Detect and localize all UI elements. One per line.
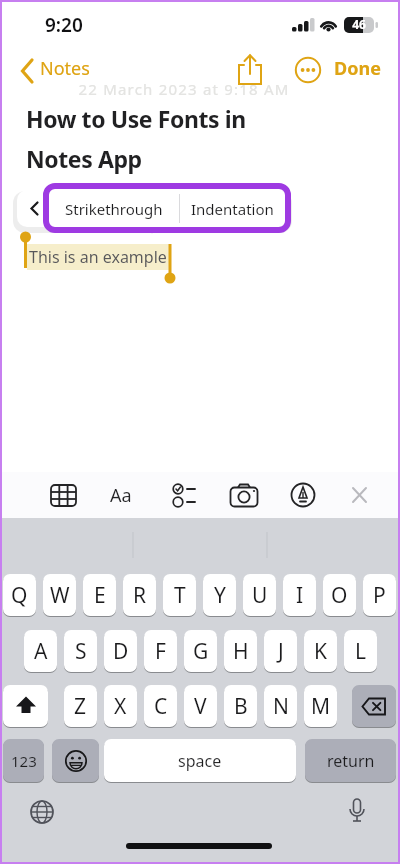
button[interactable]: Notes [14,54,124,88]
button[interactable]: Aa [102,478,140,512]
button[interactable]: return [305,739,396,782]
button[interactable]: F [144,630,177,672]
button[interactable]: Y [203,574,236,616]
staticText: space [178,750,222,772]
staticText: C [154,692,168,721]
button[interactable] [44,478,82,512]
staticText: O [331,581,348,610]
staticText: W [50,581,70,610]
staticText: Aa [110,483,132,508]
button[interactable]: M [304,685,337,727]
button[interactable]: E [83,574,116,616]
staticText: Indentation [191,199,274,219]
staticText: Done [334,56,381,81]
staticText: 9:20 [45,12,83,38]
staticText: Y [214,581,226,610]
button[interactable]: I [283,574,316,616]
staticText: 22 March 2023 at 9:18 AM [67,79,301,99]
staticText: M [311,692,331,721]
button[interactable]: Z [64,685,97,727]
staticText: P [373,581,386,610]
button[interactable]: space [104,739,296,782]
button[interactable]: Done [334,56,390,86]
button[interactable] [294,56,322,84]
staticText: V [194,692,207,721]
staticText: G [193,637,209,666]
button[interactable] [3,685,48,727]
staticText: How to Use Fonts in [26,103,246,134]
staticText: E [94,581,106,610]
button[interactable]: 123 [3,739,44,782]
staticText: 123 [11,751,37,771]
staticText: S [75,637,87,666]
button[interactable] [234,52,266,88]
button[interactable]: O [323,574,356,616]
staticText: This is an example [29,246,167,268]
staticText: return [327,750,375,772]
staticText: R [133,581,147,610]
button[interactable]: C [144,685,177,727]
button[interactable]: U [243,574,276,616]
button[interactable]: Q [3,574,36,616]
button[interactable]: J [264,630,297,672]
staticText: Q [11,581,28,610]
button[interactable]: W [43,574,76,616]
staticText: Z [74,692,87,721]
staticText: I [296,581,304,610]
button[interactable]: X [104,685,137,727]
button[interactable] [166,478,204,512]
button[interactable] [52,739,99,782]
staticText: T [174,581,186,610]
button[interactable]: T [163,574,196,616]
staticText: N [273,692,289,721]
button[interactable]: D [104,630,137,672]
button[interactable]: Strikethrough [49,190,179,227]
button[interactable] [342,478,378,512]
button[interactable]: A [24,630,57,672]
button[interactable]: N [264,685,297,727]
staticText: Notes [40,56,90,81]
staticText: B [234,692,248,721]
staticText: L [355,637,367,666]
button[interactable]: P [363,574,396,616]
staticText: 46 [344,16,374,32]
staticText: D [113,637,129,666]
staticText: J [278,637,284,666]
button[interactable]: R [123,574,156,616]
staticText: X [114,692,127,721]
button[interactable]: L [344,630,377,672]
staticText: U [252,581,268,610]
staticText: F [155,637,166,666]
staticText: K [314,637,327,666]
staticText: H [233,637,249,666]
staticText: Strikethrough [65,199,163,219]
staticText: A [34,637,48,666]
button[interactable] [284,478,322,512]
button[interactable]: S [64,630,97,672]
button[interactable]: V [184,685,217,727]
button[interactable]: G [184,630,217,672]
button[interactable]: H [224,630,257,672]
button[interactable]: Indentation [180,190,285,227]
button[interactable] [352,685,396,727]
button[interactable]: K [304,630,337,672]
staticText: Notes App [26,143,142,174]
button[interactable] [226,478,264,512]
button[interactable]: B [224,685,257,727]
